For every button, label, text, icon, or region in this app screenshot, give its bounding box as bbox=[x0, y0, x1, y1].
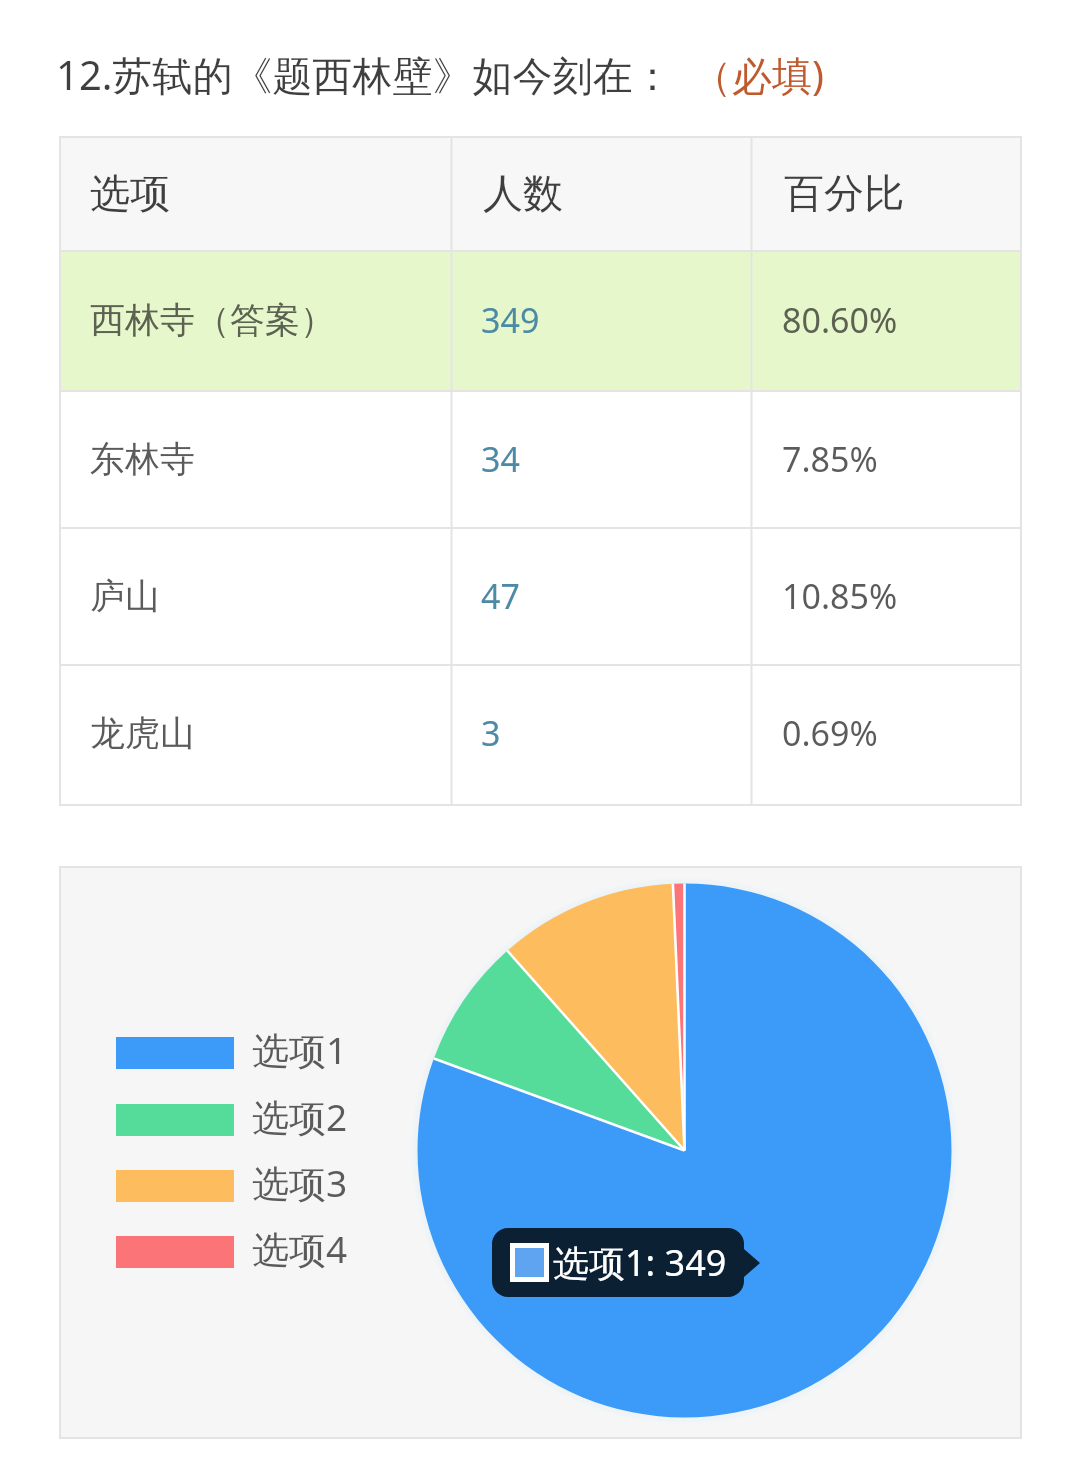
staticText: 3 bbox=[481, 710, 501, 756]
staticText: 10.85% bbox=[782, 573, 898, 619]
staticText: 龙虎山 bbox=[90, 711, 195, 755]
staticText: 0.69% bbox=[782, 710, 878, 756]
staticText: 选项4 bbox=[252, 1223, 348, 1274]
staticText: 选项3 bbox=[252, 1157, 348, 1208]
staticText: 选项2 bbox=[252, 1091, 348, 1142]
button[interactable]: 庐山 bbox=[59, 527, 1022, 664]
staticText: 西林寺（答案） bbox=[90, 298, 335, 342]
staticText: （必填) bbox=[692, 47, 824, 102]
staticText: 百分比 bbox=[784, 168, 904, 218]
button[interactable]: 西林寺（答案） bbox=[59, 250, 1022, 390]
staticText: 选项1: 349 bbox=[553, 1238, 727, 1287]
staticText: 47 bbox=[481, 573, 520, 619]
staticText: 选项1 bbox=[252, 1024, 348, 1075]
button[interactable]: 选项1 bbox=[116, 1023, 348, 1083]
staticText: 7.85% bbox=[782, 436, 878, 482]
button[interactable]: 选项4 bbox=[116, 1222, 348, 1282]
button[interactable]: 东林寺 bbox=[59, 390, 1022, 527]
staticText: 349 bbox=[481, 297, 540, 343]
button[interactable]: 龙虎山 bbox=[59, 664, 1022, 801]
staticText: 34 bbox=[481, 436, 520, 482]
staticText: 人数 bbox=[483, 168, 563, 218]
button[interactable]: 选项1: 349 bbox=[510, 1228, 727, 1297]
button[interactable]: 选项2 bbox=[116, 1090, 348, 1150]
staticText: 80.60% bbox=[782, 297, 898, 343]
button[interactable]: 选项3 bbox=[116, 1156, 348, 1216]
button[interactable]: 选项 bbox=[59, 136, 1022, 250]
staticText: 庐山 bbox=[90, 574, 160, 618]
staticText: 12.苏轼的《题西林壁》如今刻在： bbox=[56, 47, 673, 102]
staticText: 东林寺 bbox=[90, 437, 195, 481]
other: 结果饼图 bbox=[59, 866, 1022, 1439]
staticText: 选项 bbox=[90, 168, 170, 218]
